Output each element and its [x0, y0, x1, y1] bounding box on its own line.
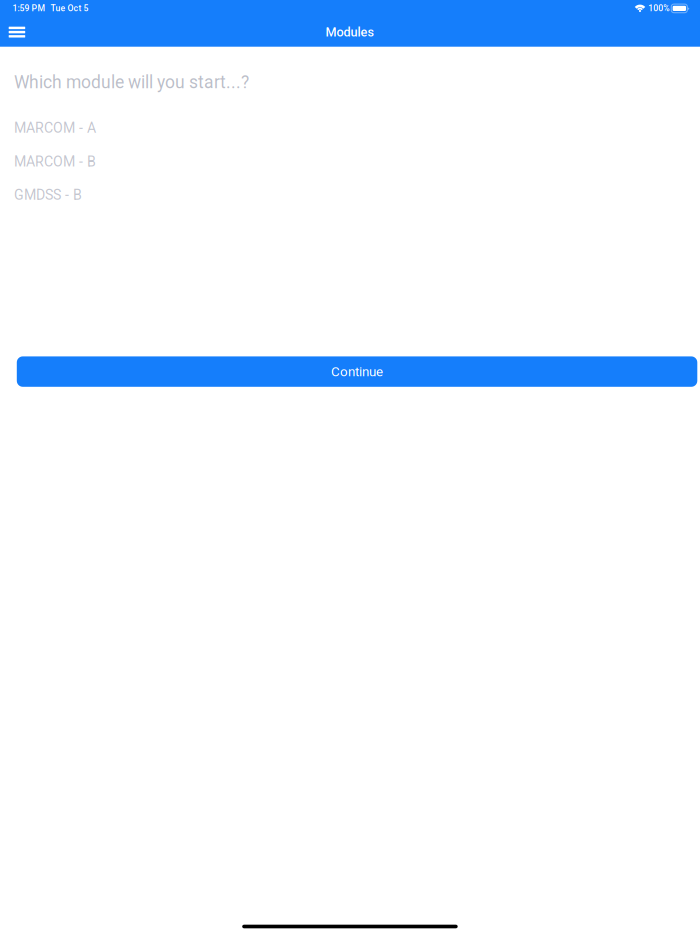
staticText: Which module will you start...?	[14, 72, 249, 92]
staticText: 1:59 PM	[13, 3, 46, 13]
staticText: MARCOM - A	[14, 120, 96, 136]
button[interactable]: Continue	[17, 356, 697, 387]
staticText: Continue	[331, 364, 383, 379]
button[interactable]: Menu	[0, 19, 34, 46]
staticText: Tue Oct 5	[51, 3, 89, 13]
staticText: Modules	[325, 25, 374, 40]
staticText: MARCOM - B	[14, 153, 96, 170]
button[interactable]: MARCOM - A	[0, 119, 700, 137]
button[interactable]: GMDSS - B	[0, 186, 700, 204]
button[interactable]: MARCOM - B	[0, 153, 700, 171]
staticText: 100%	[648, 3, 669, 13]
staticText: GMDSS - B	[14, 187, 82, 203]
